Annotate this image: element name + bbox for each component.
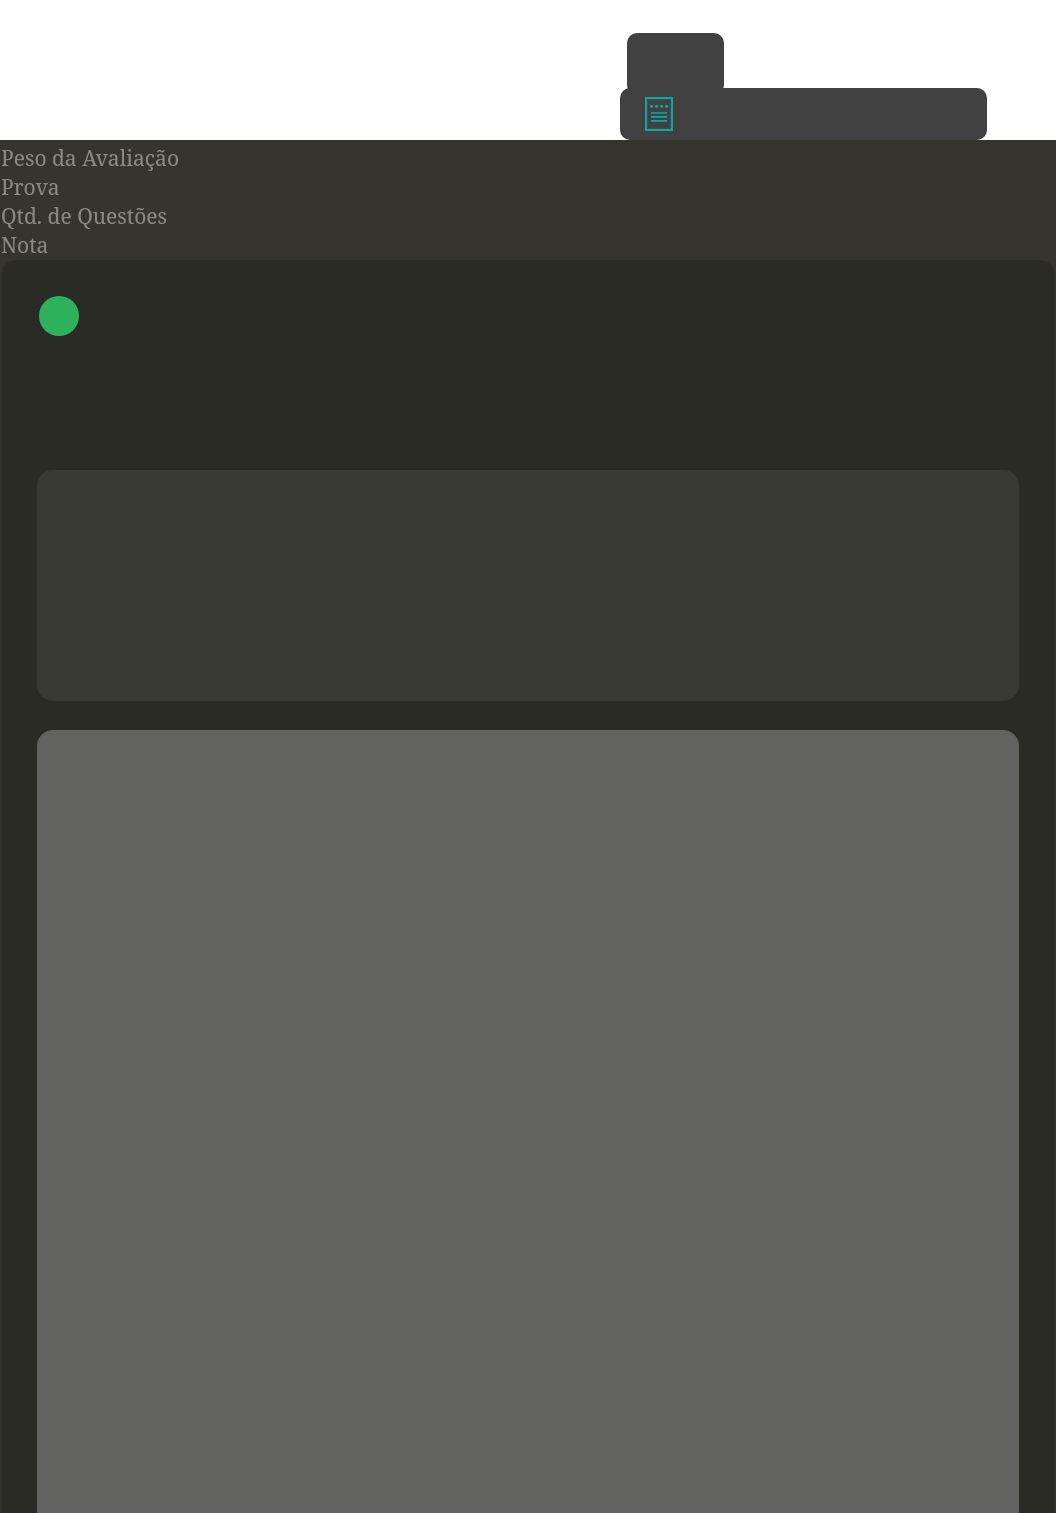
staticText: Qtd. de Questões [1, 202, 168, 231]
staticText: Prova [1, 173, 60, 202]
staticText: Peso da Avaliação [1, 144, 179, 173]
button[interactable]: Status [39, 296, 79, 336]
staticText: Nota [1, 231, 49, 260]
button[interactable] [627, 33, 724, 95]
button[interactable]: Questions list [645, 97, 673, 131]
